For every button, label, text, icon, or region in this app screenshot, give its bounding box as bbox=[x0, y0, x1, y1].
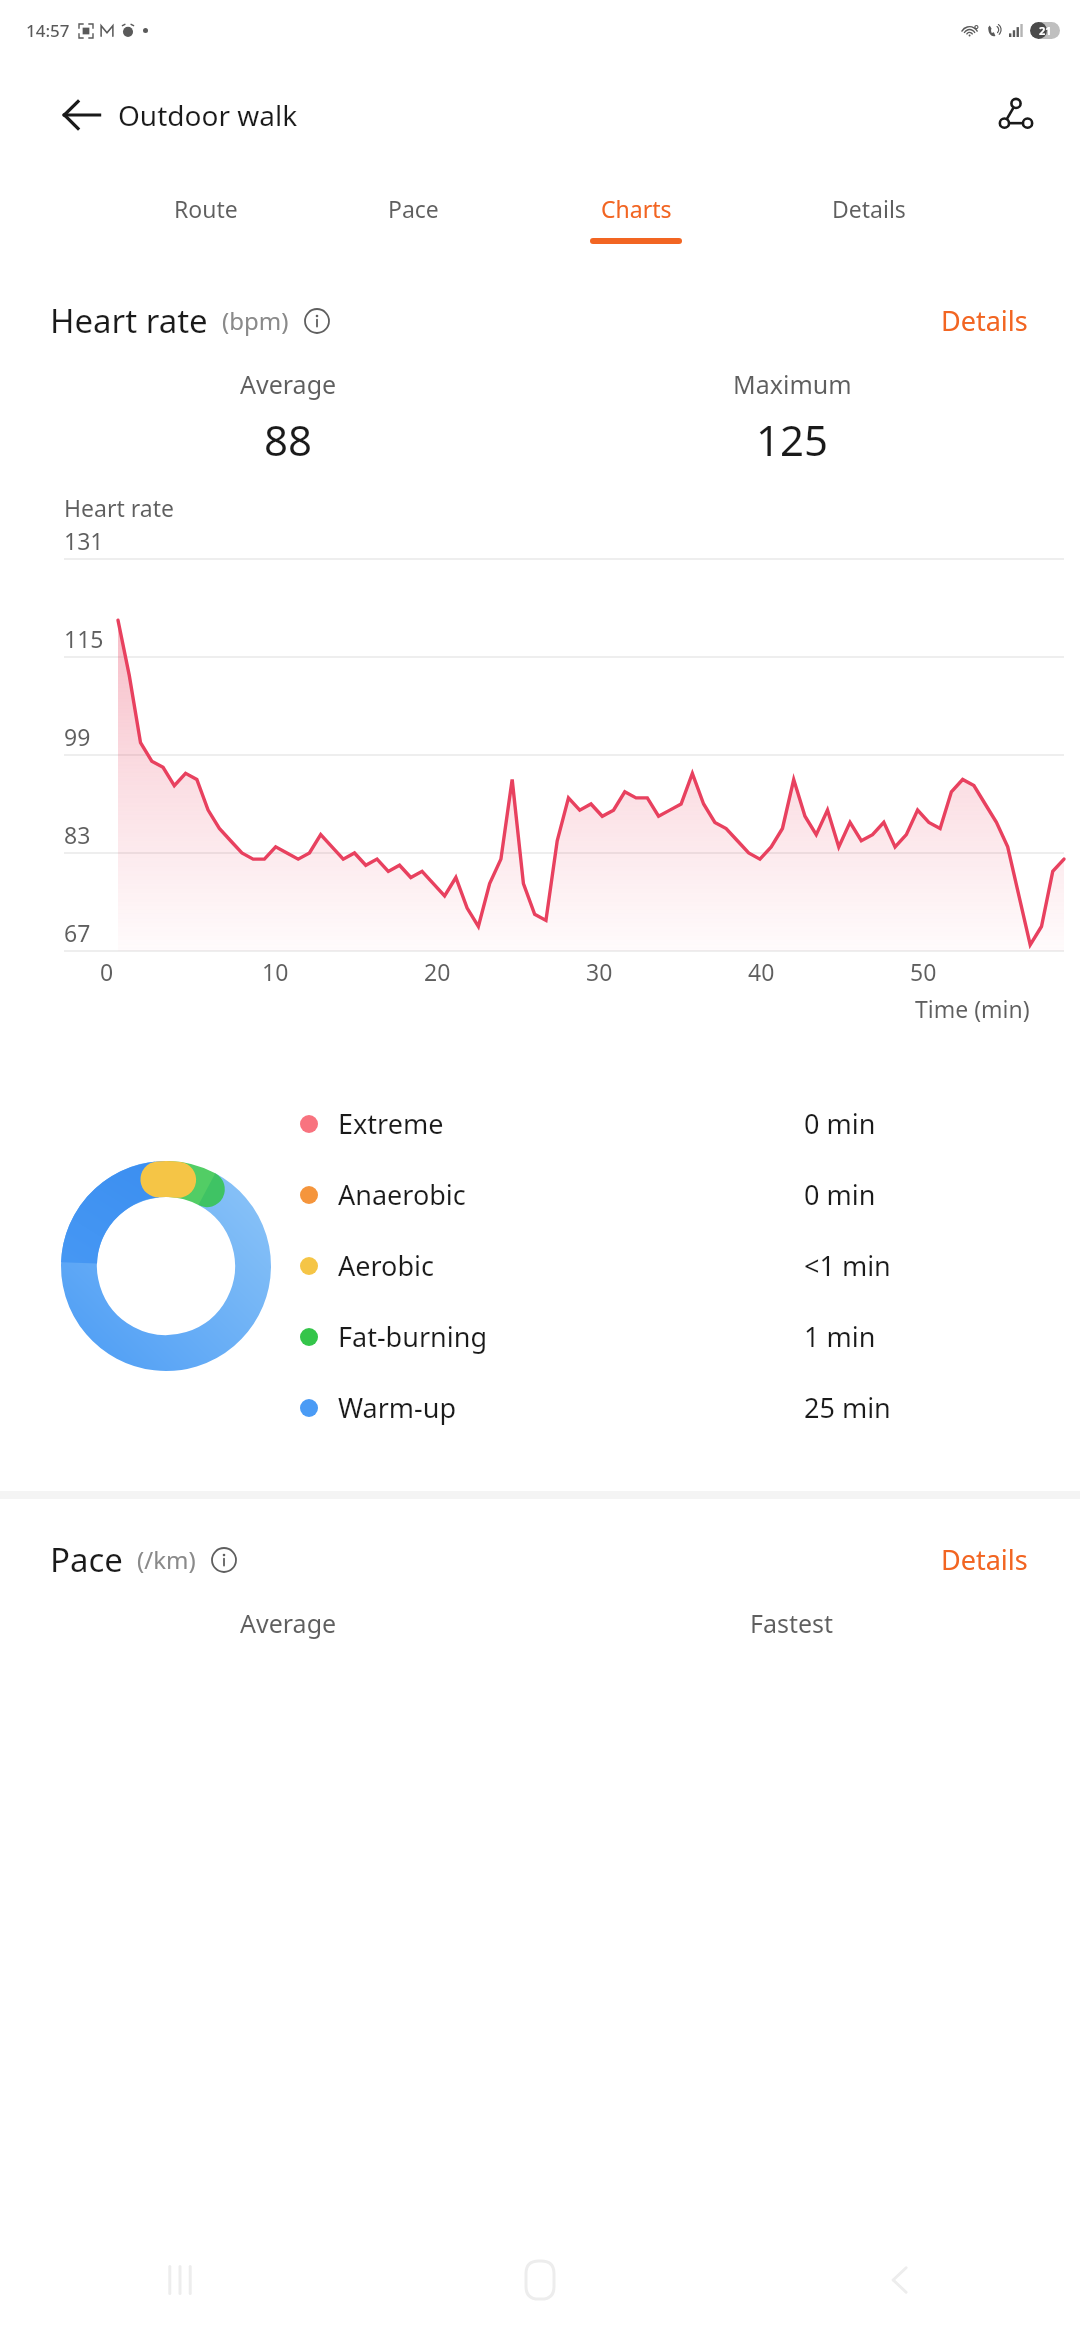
staticText: Outdoor walk bbox=[118, 96, 298, 134]
staticText: 115 bbox=[64, 623, 104, 654]
staticText: 30 bbox=[586, 956, 613, 987]
button[interactable]: Route bbox=[170, 187, 242, 250]
staticText: Average bbox=[240, 367, 337, 401]
button[interactable]: Back bbox=[54, 87, 110, 143]
staticText: 125 bbox=[756, 411, 829, 468]
button[interactable]: Share bbox=[986, 85, 1046, 145]
staticText: Heart rate bbox=[64, 492, 174, 523]
staticText: Fat-burning bbox=[338, 1318, 487, 1355]
staticText: Pace bbox=[388, 193, 439, 224]
staticText: (bpm) bbox=[222, 304, 289, 337]
button[interactable]: Warm-up bbox=[300, 1372, 1034, 1443]
staticText: 10 bbox=[262, 956, 289, 987]
staticText: 88 bbox=[264, 411, 313, 468]
staticText: Charts bbox=[601, 193, 672, 224]
staticText: Details bbox=[832, 193, 906, 224]
staticText: 99 bbox=[64, 721, 91, 752]
button[interactable]: Charts bbox=[586, 187, 686, 250]
staticText: 131 bbox=[64, 525, 104, 556]
staticText: 40 bbox=[748, 956, 775, 987]
staticText: Aerobic bbox=[338, 1247, 434, 1284]
staticText: 14:57 bbox=[26, 19, 70, 42]
staticText: 67 bbox=[64, 917, 91, 948]
staticText: Fastest bbox=[750, 1606, 834, 1640]
staticText: Anaerobic bbox=[338, 1176, 466, 1213]
staticText: 50 bbox=[910, 956, 937, 987]
staticText: 20 bbox=[424, 956, 451, 987]
staticText: 0 min bbox=[804, 1176, 876, 1213]
button[interactable]: Aerobic bbox=[300, 1230, 1034, 1301]
button[interactable]: Details bbox=[828, 187, 910, 250]
button[interactable]: Pace bbox=[384, 187, 443, 250]
staticText: Details bbox=[941, 302, 1028, 339]
staticText: Time (min) bbox=[915, 993, 1030, 1024]
staticText: Pace bbox=[50, 1537, 123, 1582]
button[interactable]: Info bbox=[301, 305, 333, 337]
button[interactable]: Details bbox=[935, 296, 1034, 345]
staticText: Average bbox=[240, 1606, 337, 1640]
staticText: 1 min bbox=[804, 1318, 876, 1355]
staticText: Warm-up bbox=[338, 1389, 457, 1426]
staticText: 0 min bbox=[804, 1105, 876, 1142]
staticText: Heart rate bbox=[50, 298, 208, 343]
button[interactable]: Extreme bbox=[300, 1088, 1034, 1159]
staticText: Maximum bbox=[733, 367, 852, 401]
staticText: <1 min bbox=[804, 1247, 891, 1284]
staticText: 83 bbox=[64, 819, 91, 850]
button[interactable]: Details bbox=[935, 1535, 1034, 1584]
button[interactable]: Info bbox=[208, 1544, 240, 1576]
button[interactable]: Fat-burning bbox=[300, 1301, 1034, 1372]
button[interactable]: Anaerobic bbox=[300, 1159, 1034, 1230]
staticText: (/km) bbox=[137, 1543, 196, 1576]
staticText: Details bbox=[941, 1541, 1028, 1578]
staticText: Route bbox=[174, 193, 238, 224]
staticText: 21 bbox=[1039, 23, 1052, 38]
staticText: Extreme bbox=[338, 1105, 444, 1142]
staticText: 0 bbox=[100, 956, 114, 987]
staticText: 25 min bbox=[804, 1389, 891, 1426]
